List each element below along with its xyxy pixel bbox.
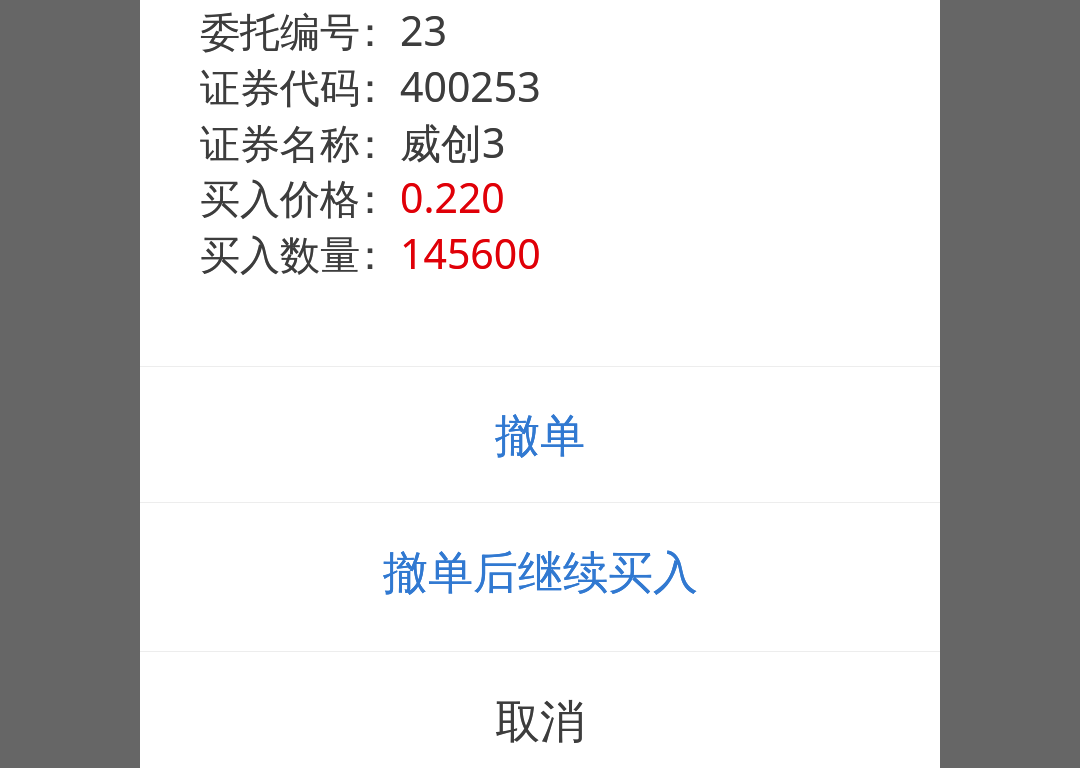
staticText: 0.220 xyxy=(400,169,505,225)
staticText: 400253 xyxy=(400,58,541,114)
staticText: 证券名称： xyxy=(200,119,390,169)
staticText: 买入数量： xyxy=(200,230,390,280)
staticText: 145600 xyxy=(400,225,541,281)
staticText: 威创3 xyxy=(400,114,506,170)
button[interactable]: 取消 xyxy=(140,651,940,768)
staticText: 撤单后继续买入 xyxy=(383,545,698,602)
staticText: 23 xyxy=(400,2,447,58)
button[interactable]: 撤单后继续买入 xyxy=(140,499,940,647)
staticText: 取消 xyxy=(495,694,585,751)
staticText: 委托编号： xyxy=(200,7,390,57)
staticText: 买入价格： xyxy=(200,174,390,224)
staticText: 撤单 xyxy=(495,408,585,465)
button[interactable]: 撤单 xyxy=(140,368,940,504)
staticText: 证券代码： xyxy=(200,63,390,113)
